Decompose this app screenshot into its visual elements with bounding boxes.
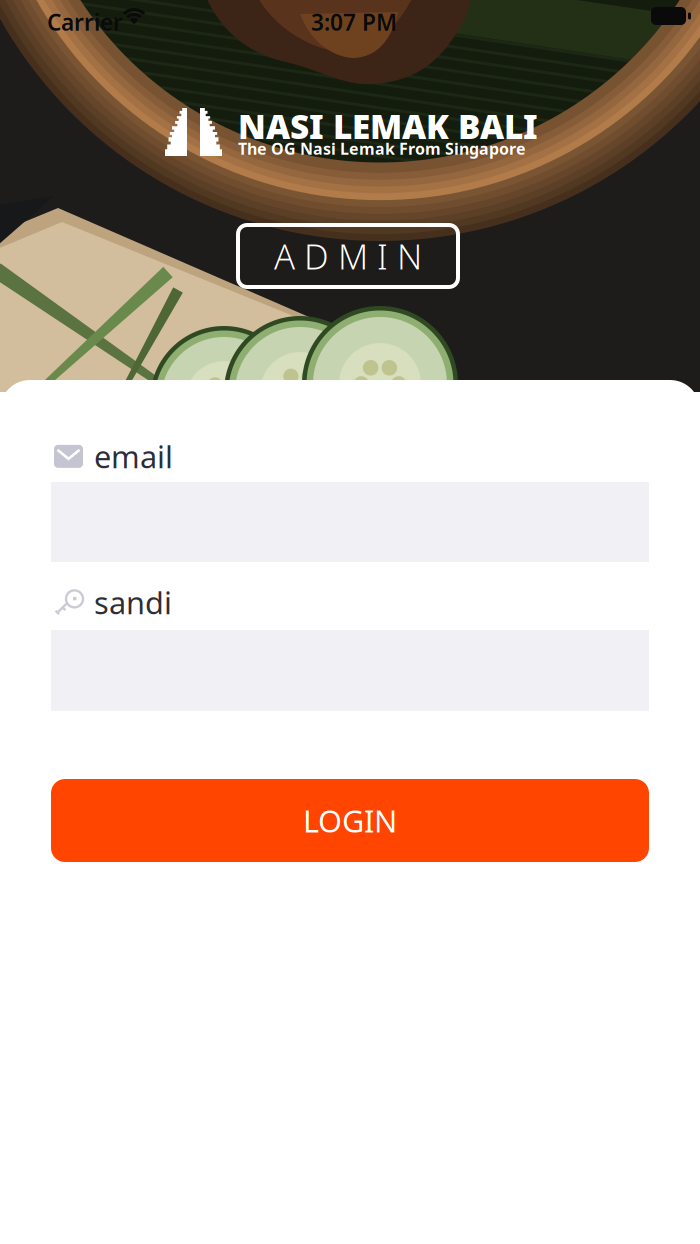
staticText: email bbox=[94, 436, 173, 477]
staticText: LOGIN bbox=[303, 800, 397, 841]
staticText: NASI LEMAK BALI bbox=[238, 104, 538, 148]
staticText: 3:07 PM bbox=[311, 7, 397, 37]
staticText: ADMIN bbox=[274, 233, 422, 279]
button[interactable]: ADMIN bbox=[238, 225, 458, 287]
button[interactable]: LOGIN bbox=[51, 779, 649, 862]
staticText: Carrier bbox=[47, 7, 123, 37]
staticText: sandi bbox=[94, 582, 172, 623]
staticText: The OG Nasi Lemak From Singapore bbox=[238, 138, 526, 159]
